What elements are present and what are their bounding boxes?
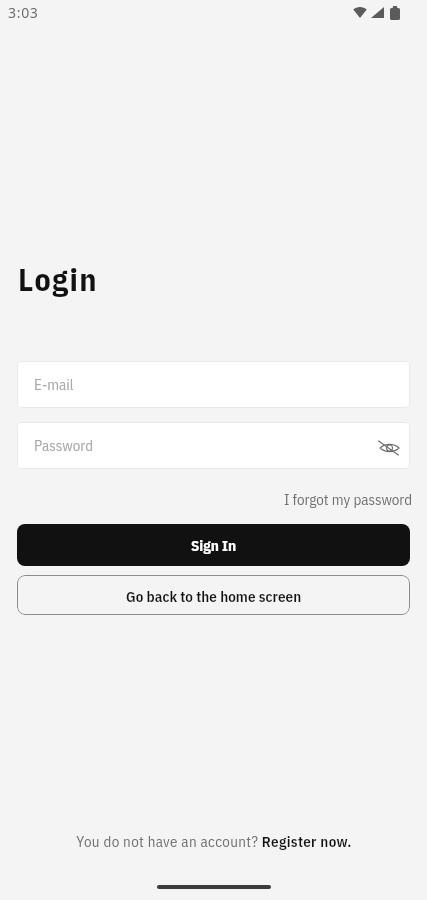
button[interactable]: Go back to the home screen	[17, 575, 410, 615]
staticText: You do not have an account? Register now…	[76, 832, 352, 850]
button[interactable]: I forgot my password	[272, 485, 427, 513]
staticText: Go back to the home screen	[126, 587, 302, 607]
button[interactable]: Password	[17, 422, 410, 469]
button[interactable]: Show password	[372, 430, 404, 462]
button[interactable]: E-mail	[17, 361, 410, 408]
staticText: I forgot my password	[284, 490, 413, 508]
staticText: E-mail	[34, 375, 74, 395]
button[interactable]: Sign In	[17, 524, 410, 566]
staticText: Sign In	[191, 536, 237, 556]
staticText: 3:03	[8, 3, 39, 22]
staticText: Login	[18, 258, 98, 300]
staticText: Password	[34, 436, 94, 456]
button[interactable]: You do not have an account? Register now…	[66, 826, 362, 856]
